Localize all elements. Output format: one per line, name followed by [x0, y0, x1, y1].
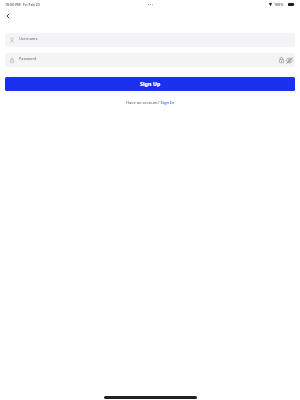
staticText: Sign Up: [140, 80, 161, 87]
button[interactable]: Password: [5, 53, 295, 67]
button[interactable]: Sign Up: [5, 77, 295, 91]
button[interactable]: Username: [5, 33, 295, 47]
staticText: Username: [19, 36, 38, 41]
staticText: 10:00 PM: [5, 2, 21, 7]
button[interactable]: Back: [3, 11, 13, 21]
button[interactable]: Show password: [285, 56, 293, 64]
button[interactable]: Lock: [277, 56, 285, 64]
staticText: Password: [19, 56, 37, 61]
staticText: 100%: [274, 2, 284, 7]
staticText: Fri Feb 23: [23, 2, 40, 7]
button[interactable]: Have an account? Sign In: [126, 100, 175, 105]
